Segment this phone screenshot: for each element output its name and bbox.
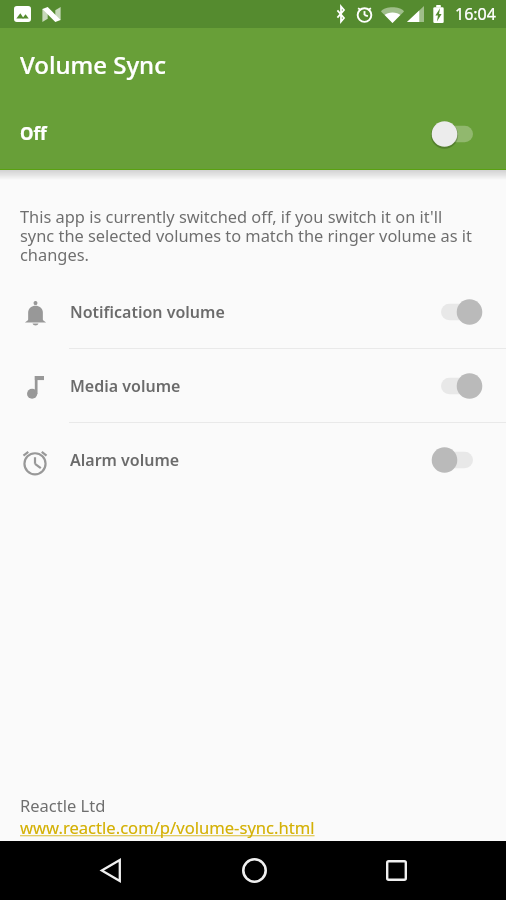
staticText: Volume Sync — [20, 48, 166, 81]
staticText: 16:04 — [455, 3, 496, 25]
staticText: Off — [20, 122, 47, 145]
staticText: Alarm volume — [70, 449, 180, 471]
staticText: Notification volume — [70, 301, 225, 323]
button[interactable]: Back — [76, 841, 146, 900]
button[interactable]: Home — [219, 841, 289, 900]
staticText: www.reactle.com/p/volume-sync.html — [20, 816, 315, 839]
button[interactable]: Alarm volume — [0, 423, 506, 496]
staticText: Media volume — [70, 375, 181, 397]
button[interactable]: Recents — [361, 841, 431, 900]
staticText: Reactle Ltd — [20, 794, 106, 816]
button[interactable]: Media volume — [0, 349, 506, 422]
button[interactable]: Volume sync master switch, Off — [0, 98, 506, 169]
staticText: This app is currently switched off, if y… — [20, 205, 475, 266]
button[interactable]: Notification volume — [0, 275, 506, 348]
button[interactable]: www.reactle.com/p/volume-sync.html — [20, 816, 315, 839]
